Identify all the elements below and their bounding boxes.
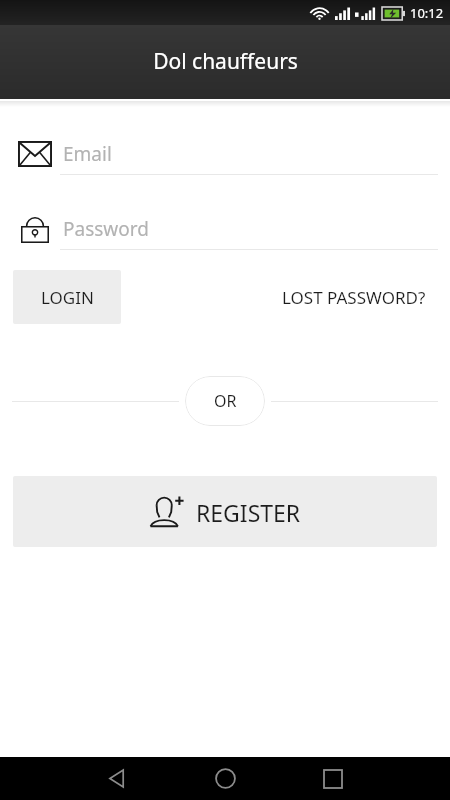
staticText: OR: [214, 390, 237, 412]
button[interactable]: OR: [185, 376, 265, 426]
staticText: LOGIN: [41, 286, 94, 309]
staticText: 10:12: [410, 4, 444, 22]
button[interactable]: LOGIN: [13, 270, 121, 324]
button[interactable]: Email: [0, 134, 450, 174]
button[interactable]: LOST PASSWORD?: [276, 276, 432, 319]
staticText: Dol chauffeurs: [153, 47, 298, 76]
button[interactable]: Back: [95, 757, 139, 800]
staticText: Password: [63, 216, 149, 242]
button[interactable]: Home: [203, 757, 247, 800]
button[interactable]: REGISTER: [13, 476, 437, 547]
staticText: Email: [63, 141, 112, 167]
button[interactable]: Password: [0, 209, 450, 249]
staticText: LOST PASSWORD?: [282, 286, 426, 309]
button[interactable]: Recents: [311, 757, 355, 800]
staticText: REGISTER: [196, 497, 301, 528]
